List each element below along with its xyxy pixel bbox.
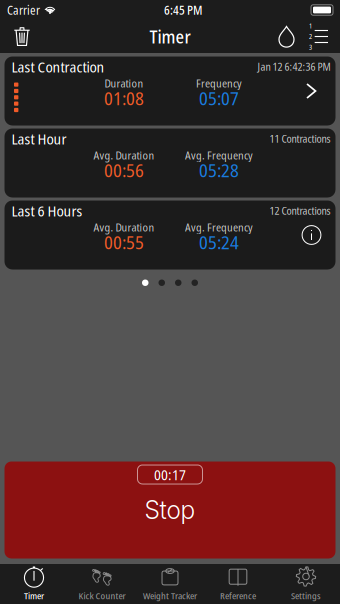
staticText: Weight Tracker	[143, 589, 197, 602]
staticText: Last Contraction	[11, 56, 104, 77]
staticText: Avg. Duration	[93, 219, 154, 235]
button[interactable]: Info	[297, 221, 325, 249]
staticText: Reference	[220, 589, 256, 602]
staticText: 00:56	[104, 157, 144, 183]
staticText: 05:24	[199, 229, 239, 255]
staticText: 00:17	[154, 464, 186, 484]
staticText: Kick Counter	[78, 589, 125, 602]
button[interactable]: Kick Counter	[68, 564, 136, 604]
button[interactable]: Delete	[5, 20, 39, 52]
staticText: 00:55	[104, 229, 144, 255]
staticText: Timer	[24, 589, 44, 602]
staticText: 01:08	[104, 85, 144, 111]
staticText: Carrier	[7, 2, 40, 18]
staticText: Last Hour	[11, 128, 66, 149]
staticText: 05:28	[199, 157, 239, 183]
staticText: 12 Contractions	[269, 203, 330, 218]
button[interactable]: Reference	[204, 564, 272, 604]
staticText: Stop	[144, 495, 195, 525]
button[interactable]: Stop	[4, 461, 335, 558]
button[interactable]: Contraction log	[302, 20, 335, 52]
staticText: Frequency	[196, 75, 242, 91]
staticText: Jan 12 6:42:36 PM	[257, 59, 330, 74]
staticText: Avg. Frequency	[185, 219, 253, 235]
staticText: Avg. Frequency	[185, 147, 253, 163]
button[interactable]: Timer	[0, 564, 68, 604]
button[interactable]: Last Contraction	[4, 56, 335, 125]
staticText: Settings	[291, 589, 321, 602]
staticText: 3	[309, 42, 312, 52]
staticText: Duration	[104, 75, 143, 91]
staticText: 05:07	[199, 85, 239, 111]
staticText: 1	[309, 21, 312, 30]
staticText: Avg. Duration	[93, 147, 154, 163]
button[interactable]: Weight Tracker	[136, 564, 204, 604]
staticText: Timer	[149, 24, 190, 49]
staticText: 6:45 PM	[164, 2, 202, 18]
staticText: 2	[309, 32, 312, 41]
staticText: 11 Contractions	[269, 131, 330, 146]
button[interactable]: Water intake	[271, 20, 302, 52]
button[interactable]: Settings	[272, 564, 340, 604]
staticText: Last 6 Hours	[11, 200, 82, 221]
